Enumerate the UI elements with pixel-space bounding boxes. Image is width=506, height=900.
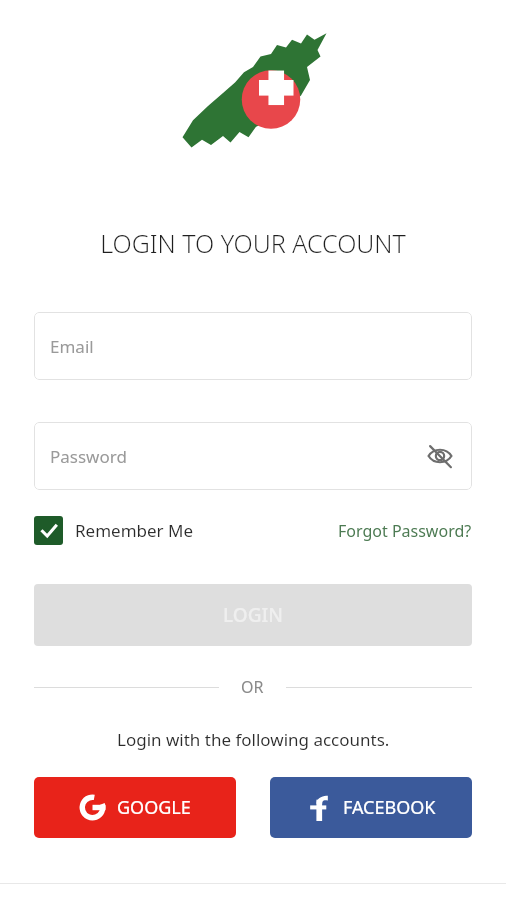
staticText: Login with the following accounts. (117, 728, 390, 751)
button[interactable]: Show password (422, 438, 458, 474)
staticText: LOGIN TO YOUR ACCOUNT (100, 226, 406, 260)
button[interactable]: GOOGLE (34, 777, 236, 838)
button[interactable]: Forgot Password? (338, 520, 472, 542)
staticText: Password (50, 445, 127, 468)
button[interactable]: FACEBOOK (270, 777, 472, 838)
staticText: FACEBOOK (343, 795, 436, 820)
staticText: GOOGLE (117, 795, 191, 820)
staticText: OR (241, 676, 264, 698)
button[interactable]: Remember Me (34, 516, 194, 545)
staticText: LOGIN (223, 602, 283, 628)
staticText: Forgot Password? (338, 520, 472, 542)
staticText: Email (50, 335, 94, 358)
button[interactable]: Email (34, 312, 472, 380)
staticText: Remember Me (75, 519, 194, 542)
button[interactable]: Password (34, 422, 472, 490)
